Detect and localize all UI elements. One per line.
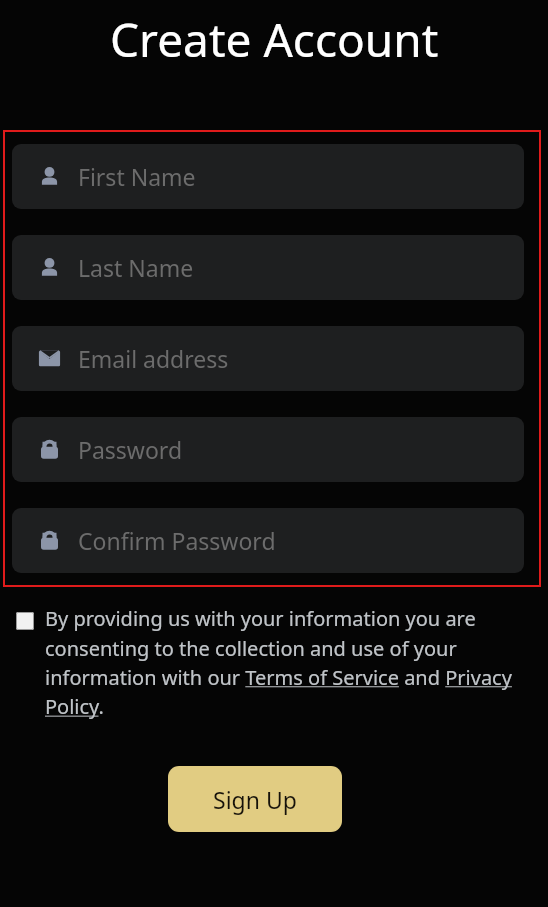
staticText: Create Account bbox=[110, 8, 439, 71]
staticText: Email address bbox=[78, 343, 229, 374]
staticText: Password bbox=[78, 434, 183, 465]
button[interactable]: Consent checkbox bbox=[16, 605, 526, 720]
staticText: Sign Up bbox=[213, 784, 297, 815]
staticText: Last Name bbox=[78, 252, 194, 283]
other: Consent checkbox bbox=[16, 612, 34, 630]
button[interactable]: First Name bbox=[12, 144, 524, 209]
button[interactable]: Confirm Password bbox=[12, 508, 524, 573]
staticText: Confirm Password bbox=[78, 525, 276, 556]
staticText: First Name bbox=[78, 161, 196, 192]
button[interactable]: Email address bbox=[12, 326, 524, 391]
button[interactable]: Password bbox=[12, 417, 524, 482]
staticText: By providing us with your information yo… bbox=[45, 605, 526, 720]
button[interactable]: Sign Up bbox=[168, 766, 342, 832]
button[interactable]: Last Name bbox=[12, 235, 524, 300]
